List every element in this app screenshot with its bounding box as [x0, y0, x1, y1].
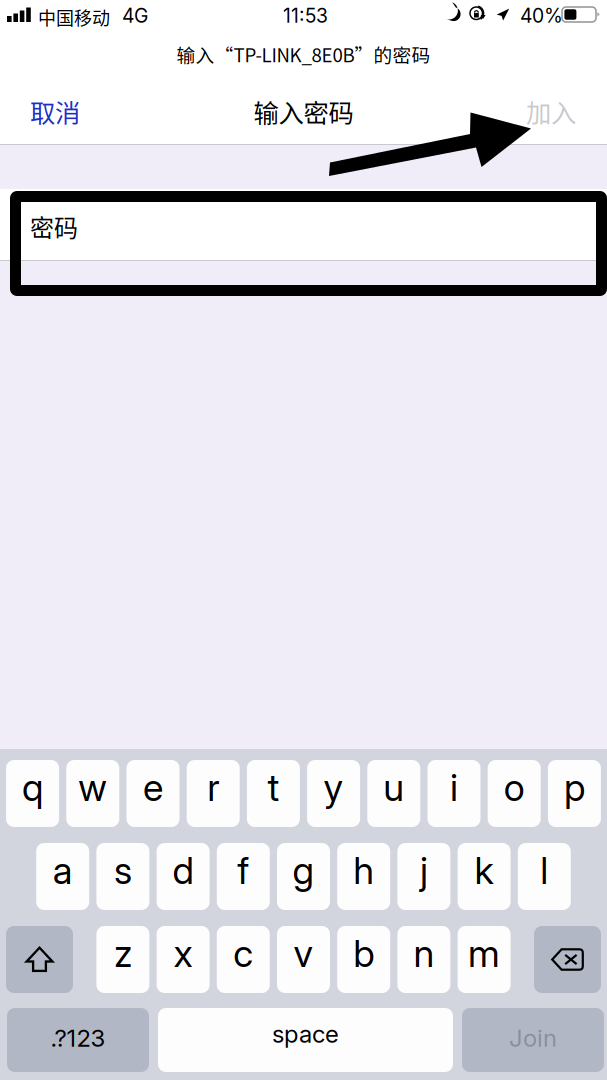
staticText: g — [292, 848, 314, 893]
button[interactable]: r — [187, 760, 240, 827]
button[interactable]: s — [96, 843, 149, 910]
staticText: t — [267, 765, 279, 810]
button[interactable]: l — [518, 843, 571, 910]
button[interactable]: h — [337, 843, 390, 910]
button[interactable]: d — [157, 843, 210, 910]
button[interactable]: Delete — [534, 926, 601, 993]
staticText: o — [504, 765, 525, 810]
staticText: s — [114, 848, 132, 893]
button[interactable]: Join — [462, 1008, 604, 1072]
button[interactable]: y — [307, 760, 360, 827]
button[interactable]: v — [277, 926, 330, 993]
button[interactable]: z — [96, 926, 149, 993]
staticText: 中国移动 — [38, 4, 110, 30]
staticText: 输入密码 — [253, 93, 353, 130]
button[interactable]: w — [66, 760, 119, 827]
staticText: i — [450, 765, 458, 810]
staticText: 11:53 — [283, 4, 328, 27]
button[interactable]: p — [548, 760, 601, 827]
button[interactable]: x — [157, 926, 210, 993]
staticText: z — [114, 931, 132, 976]
staticText: n — [413, 931, 434, 976]
button[interactable]: Shift — [6, 926, 73, 993]
button[interactable]: n — [397, 926, 450, 993]
staticText: x — [174, 931, 193, 976]
button[interactable]: 取消 — [0, 79, 108, 144]
button[interactable]: .?123 — [7, 1008, 149, 1072]
staticText: y — [324, 765, 344, 810]
staticText: .?123 — [50, 1023, 105, 1052]
staticText: l — [540, 848, 548, 893]
staticText: h — [353, 848, 374, 893]
staticText: p — [564, 765, 585, 810]
button[interactable]: g — [277, 843, 330, 910]
staticText: k — [475, 848, 494, 893]
staticText: w — [78, 765, 107, 810]
button[interactable]: o — [488, 760, 541, 827]
staticText: 取消 — [30, 93, 80, 130]
button[interactable]: i — [427, 760, 480, 827]
staticText: 40% — [520, 4, 563, 27]
staticText: j — [420, 848, 428, 893]
staticText: 4G — [122, 4, 148, 27]
staticText: Join — [509, 1023, 557, 1052]
staticText: r — [207, 765, 219, 810]
staticText: u — [383, 765, 404, 810]
button[interactable]: u — [367, 760, 420, 827]
button[interactable]: t — [247, 760, 300, 827]
button[interactable]: k — [458, 843, 511, 910]
staticText: c — [233, 931, 253, 976]
button[interactable]: a — [36, 843, 89, 910]
staticText: f — [237, 848, 249, 893]
button[interactable]: j — [397, 843, 450, 910]
button[interactable]: c — [217, 926, 270, 993]
button[interactable]: 加入 — [498, 79, 607, 144]
staticText: 输入“TP-LINK_8E0B”的密码 — [176, 40, 430, 67]
staticText: v — [293, 931, 313, 976]
staticText: m — [468, 931, 500, 976]
button[interactable]: f — [217, 843, 270, 910]
button[interactable]: e — [126, 760, 179, 827]
staticText: e — [143, 765, 163, 810]
staticText: 加入 — [526, 93, 576, 130]
staticText: b — [353, 931, 374, 976]
button[interactable]: space — [158, 1008, 453, 1072]
staticText: d — [173, 848, 194, 893]
staticText: 密码 — [30, 209, 78, 244]
button[interactable]: m — [458, 926, 511, 993]
button[interactable]: q — [6, 760, 59, 827]
staticText: q — [22, 765, 43, 810]
button[interactable]: b — [337, 926, 390, 993]
staticText: space — [272, 1019, 339, 1048]
staticText: a — [53, 848, 73, 893]
